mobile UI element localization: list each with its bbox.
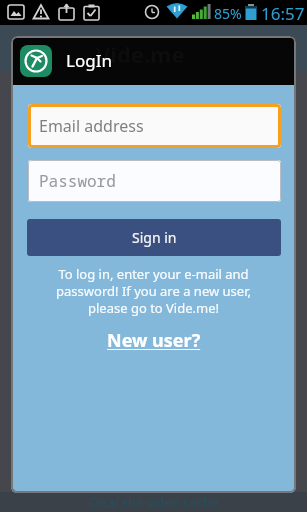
staticText: Sign in: [132, 228, 177, 247]
button[interactable]: New user?: [107, 328, 201, 353]
staticText: Email address: [39, 115, 144, 137]
staticText: Clear the video cache: [88, 493, 219, 511]
staticText: To log in, enter your e-mail and passwor…: [56, 265, 251, 317]
button[interactable]: Email address: [28, 104, 281, 148]
staticText: 16:57: [261, 2, 305, 25]
staticText: Vide.me: [96, 39, 185, 69]
button[interactable]: Password: [28, 160, 281, 202]
button[interactable]: Sign in: [27, 219, 281, 256]
staticText: New user?: [107, 328, 201, 353]
staticText: Password: [39, 170, 116, 192]
staticText: 85%: [214, 4, 242, 23]
staticText: LogIn: [66, 49, 112, 72]
